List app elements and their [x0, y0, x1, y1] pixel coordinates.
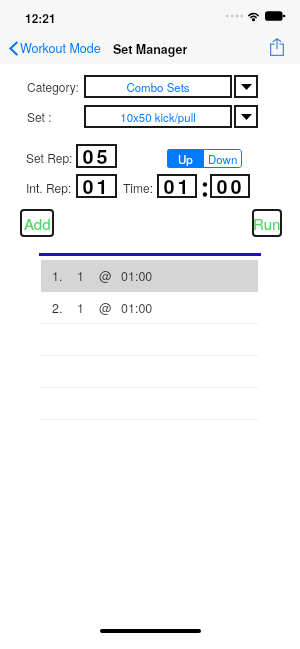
staticText: 01:00: [121, 299, 153, 317]
button[interactable]: Combo Sets: [84, 75, 232, 98]
staticText: Combo Sets: [126, 79, 190, 95]
button[interactable]: Workout Mode: [8, 39, 101, 57]
staticText: 01:00: [121, 267, 153, 285]
button[interactable]: 01: [76, 174, 117, 198]
staticText: Down: [208, 151, 238, 167]
button[interactable]: 00: [210, 174, 250, 198]
staticText: 01: [163, 171, 192, 195]
staticText: 2.: [52, 299, 63, 317]
staticText: Set Manager: [113, 40, 188, 58]
staticText: 10x50 kick/pull: [120, 109, 196, 125]
staticText: Up: [178, 151, 193, 167]
staticText: Add: [24, 213, 51, 234]
staticText: 05: [82, 141, 111, 165]
staticText: 12:21: [25, 9, 56, 26]
button[interactable]: Open dropdown: [234, 75, 258, 98]
staticText: 1.: [52, 267, 63, 285]
button[interactable]: Run: [252, 209, 282, 237]
button[interactable]: Add: [20, 209, 54, 237]
staticText: 01: [82, 171, 111, 195]
staticText: @: [99, 267, 112, 285]
staticText: Run: [253, 213, 281, 234]
staticText: Time:: [123, 179, 154, 196]
button[interactable]: Down: [204, 149, 242, 168]
button[interactable]: 2.: [41, 292, 258, 324]
staticText: @: [99, 299, 112, 317]
button[interactable]: Share: [266, 35, 288, 59]
staticText: 1: [77, 267, 84, 285]
button[interactable]: 1.: [41, 260, 258, 292]
button[interactable]: Up: [167, 149, 204, 168]
staticText: 1: [77, 299, 84, 317]
staticText: Int. Rep:: [26, 179, 72, 196]
button[interactable]: Open dropdown: [234, 105, 258, 128]
button[interactable]: 05: [76, 144, 117, 168]
staticText: Category:: [27, 78, 79, 95]
button[interactable]: 10x50 kick/pull: [84, 105, 232, 128]
staticText: Workout Mode: [20, 39, 101, 57]
staticText: Set Rep:: [26, 149, 73, 166]
staticText: Set :: [27, 108, 52, 125]
staticText: 00: [216, 171, 245, 195]
button[interactable]: 01: [157, 174, 197, 198]
